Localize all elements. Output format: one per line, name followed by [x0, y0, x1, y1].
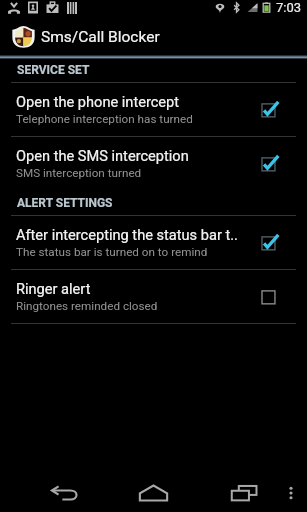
staticText: Ringtones reminded closed — [16, 299, 158, 313]
staticText: SMS interception turned — [16, 166, 142, 180]
staticText: SERVICE SET — [17, 63, 90, 77]
button[interactable]: More options — [277, 471, 305, 512]
button[interactable]: Enabled — [257, 230, 283, 256]
staticText: Sms/Call Blocker — [41, 28, 160, 46]
button[interactable]: Recent apps — [204, 471, 284, 512]
staticText: Open the phone intercept — [16, 93, 180, 110]
staticText: Telephone interception has turned — [16, 112, 193, 126]
button[interactable]: After intercepting the status bar t.. — [0, 216, 307, 269]
button[interactable]: Disabled — [257, 284, 283, 310]
staticText: Ringer alert — [16, 280, 91, 297]
button[interactable]: Home — [113, 471, 193, 512]
button[interactable]: Enabled — [257, 151, 283, 177]
button[interactable]: Open the phone intercept — [0, 83, 307, 136]
button[interactable]: Ringer alert — [0, 270, 307, 323]
button[interactable]: Enabled — [257, 97, 283, 123]
button[interactable]: Back — [24, 471, 104, 512]
staticText: ALERT SETTINGS — [17, 196, 113, 210]
staticText: The status bar is turned on to remind — [16, 245, 208, 259]
staticText: Open the SMS interception — [16, 147, 189, 164]
staticText: 7:03 — [276, 0, 302, 15]
staticText: After intercepting the status bar t.. — [16, 226, 238, 243]
button[interactable]: Open the SMS interception — [0, 137, 307, 190]
